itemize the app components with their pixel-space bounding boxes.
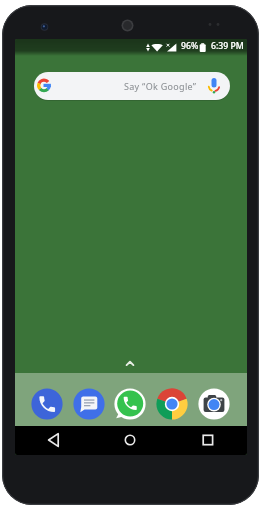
button[interactable] xyxy=(114,388,146,420)
button[interactable] xyxy=(198,388,230,420)
staticText: Say “Ok Google” xyxy=(124,80,197,92)
button[interactable]: Say “Ok Google” xyxy=(34,72,230,100)
staticText: 96% xyxy=(181,40,199,52)
staticText: 6:39 PM xyxy=(211,40,244,52)
button[interactable] xyxy=(156,388,188,420)
button[interactable] xyxy=(73,388,105,420)
button[interactable] xyxy=(197,429,219,451)
button[interactable] xyxy=(123,358,137,369)
button[interactable] xyxy=(31,388,63,420)
button[interactable] xyxy=(45,429,67,451)
button[interactable] xyxy=(119,429,141,451)
